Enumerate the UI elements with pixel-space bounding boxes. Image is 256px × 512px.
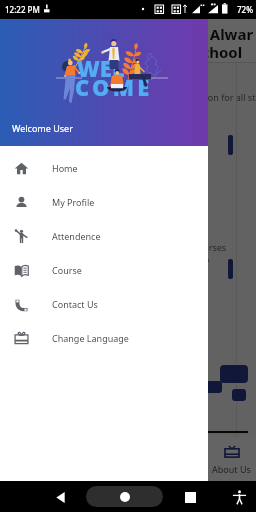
staticText: Contact Us [52,298,98,310]
button[interactable]: Contact Us [0,287,208,321]
staticText: Govt. Sr. Sec. School Alwar Senior Secon… [60,24,254,63]
button[interactable]: Back [47,484,73,510]
staticText: Attendence [52,230,101,242]
button[interactable]: Attendence [0,219,208,253]
button[interactable]: Accessibility [227,485,251,509]
staticText: COME [75,72,153,102]
staticText: 72% [237,4,253,15]
button[interactable]: Recent apps [177,484,203,510]
button[interactable]: Home [86,486,163,507]
button[interactable]: My Profile [0,185,208,219]
staticText: About Us [212,463,251,475]
button[interactable]: Home [0,151,208,185]
staticText: Course [52,264,82,276]
staticText: Courses Info [192,241,227,266]
staticText: Change Language [52,332,129,344]
staticText: Welcome User [12,122,73,134]
staticText: Home [52,162,78,174]
staticText: WEL [77,53,125,83]
button[interactable]: Change Language [0,321,208,355]
staticText: My Profile [52,196,95,208]
button[interactable]: Course [0,253,208,287]
staticText: Welcome to our institute We provide qual… [96,79,256,117]
staticText: 12:22 PM [5,4,40,15]
